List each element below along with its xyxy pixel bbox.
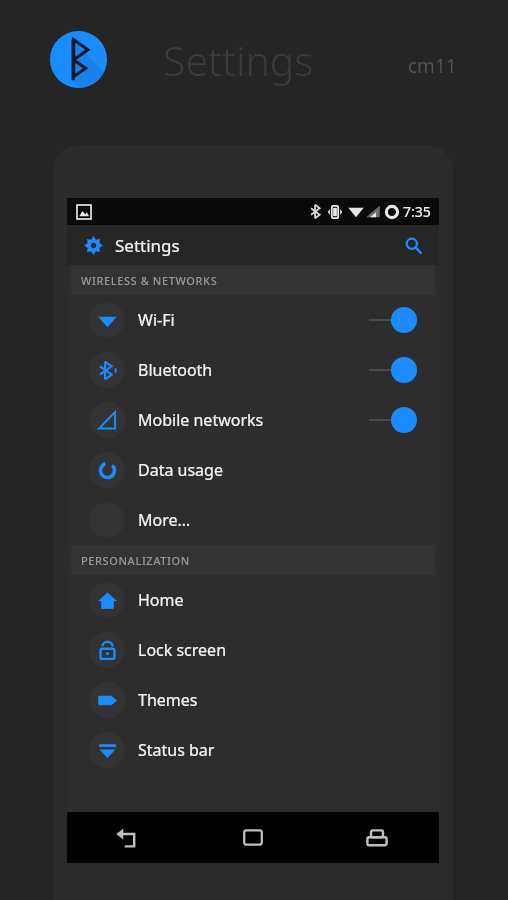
button[interactable]: Bluetooth (67, 345, 439, 395)
other: App icon (50, 31, 107, 88)
staticText: cm11 (408, 53, 457, 79)
button[interactable]: More… (67, 495, 439, 545)
staticText: More… (138, 509, 191, 531)
staticText: Settings (163, 32, 314, 88)
staticText: Bluetooth (138, 359, 213, 381)
button[interactable]: Data usage (67, 445, 439, 495)
button[interactable]: Toggle Wi-Fi (369, 295, 417, 345)
staticText: 7:35 (403, 202, 431, 221)
staticText: Home (138, 589, 184, 611)
staticText: WIRELESS & NETWORKS (81, 273, 218, 288)
staticText: Data usage (138, 459, 223, 481)
staticText: Settings (115, 234, 180, 257)
button[interactable]: Wi-Fi (67, 295, 439, 345)
button[interactable]: Back (67, 812, 191, 863)
button[interactable]: Settings (67, 225, 439, 265)
staticText: Status bar (138, 739, 215, 761)
button[interactable]: Themes (67, 675, 439, 725)
staticText: Lock screen (138, 639, 227, 661)
button[interactable]: Recent apps (315, 812, 439, 863)
button[interactable]: Home (191, 812, 315, 863)
button[interactable]: Mobile networks (67, 395, 439, 445)
staticText: Wi-Fi (138, 309, 175, 331)
staticText: Themes (138, 689, 198, 711)
staticText: PERSONALIZATION (81, 553, 190, 568)
button[interactable]: Toggle Bluetooth (369, 345, 417, 395)
button[interactable]: Lock screen (67, 625, 439, 675)
button[interactable]: Search (393, 225, 433, 265)
staticText: Mobile networks (138, 409, 264, 431)
button[interactable]: Home (67, 575, 439, 625)
button[interactable]: Toggle Mobile networks (369, 395, 417, 445)
button[interactable]: Status bar (67, 725, 439, 775)
